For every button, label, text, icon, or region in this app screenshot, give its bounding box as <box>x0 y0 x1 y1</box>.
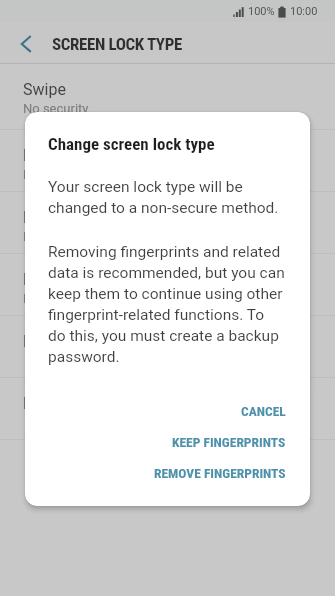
button[interactable]: Password <box>0 254 335 315</box>
button[interactable] <box>0 23 50 65</box>
staticText: password. <box>48 348 120 366</box>
staticText: Password <box>23 270 94 289</box>
staticText: data is recommended, but you can <box>48 264 285 282</box>
button[interactable]: Swipe <box>0 64 335 129</box>
staticText: Removing fingerprints and related <box>48 243 281 261</box>
staticText: Medium security <box>23 167 120 182</box>
staticText: changed to a non-secure method. <box>48 199 279 217</box>
button[interactable]: CANCEL <box>241 395 286 426</box>
staticText: PIN <box>23 208 49 227</box>
staticText: Your screen lock type will be <box>48 178 243 196</box>
staticText: SCREEN LOCK TYPE <box>52 34 182 54</box>
staticText: KEEP FINGERPRINTS <box>172 434 286 450</box>
staticText: High security <box>23 291 99 306</box>
staticText: Fingerprints <box>23 394 109 413</box>
button[interactable]: Pattern <box>0 130 335 191</box>
staticText: 100% <box>248 5 275 18</box>
button[interactable]: REMOVE FINGERPRINTS <box>154 457 286 488</box>
staticText: REMOVE FINGERPRINTS <box>154 465 286 481</box>
staticText: Swipe <box>23 80 66 99</box>
staticText: Change screen lock type <box>48 134 215 154</box>
staticText: No security <box>23 101 89 116</box>
staticText: do this, you must create a backup <box>48 327 279 345</box>
staticText: None <box>23 332 61 351</box>
staticText: Medium to high security <box>23 229 162 244</box>
button[interactable]: PIN <box>0 192 335 253</box>
button[interactable]: Fingerprints <box>0 378 335 439</box>
staticText: CANCEL <box>241 403 286 419</box>
button[interactable]: None <box>0 316 335 377</box>
staticText: keep them to continue using other <box>48 285 283 303</box>
staticText: 10:00 <box>290 5 318 18</box>
staticText: fingerprint-related functions. To <box>48 306 265 324</box>
staticText: Pattern <box>23 146 75 165</box>
button[interactable]: KEEP FINGERPRINTS <box>172 426 286 457</box>
